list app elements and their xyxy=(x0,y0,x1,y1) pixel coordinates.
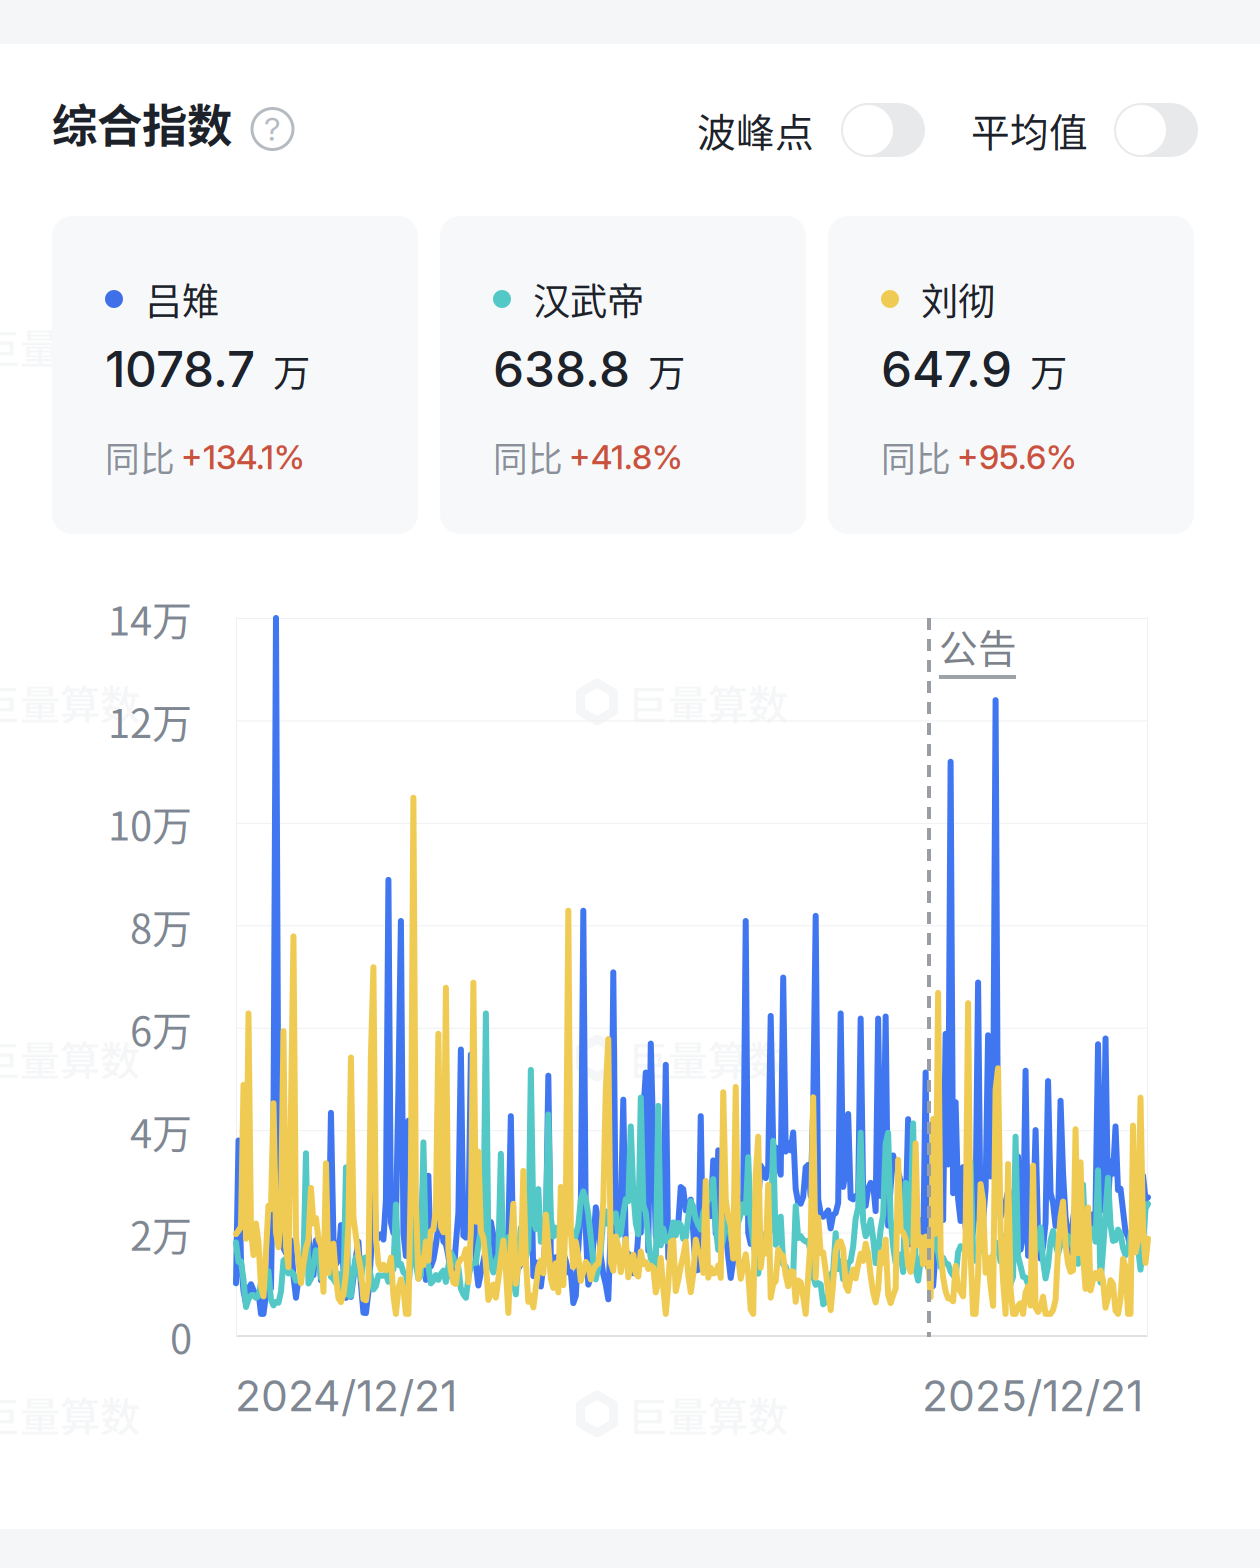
staticText: 2024/12/21 xyxy=(235,1370,457,1422)
staticText: 14万 xyxy=(108,589,192,647)
staticText: 12万 xyxy=(108,692,192,749)
staticText: +134.1% xyxy=(181,437,305,477)
staticText: 万 xyxy=(273,344,310,398)
staticText: 波峰点 xyxy=(697,102,814,158)
button[interactable]: 综合指数说明 xyxy=(0,90,293,156)
staticText: 综合指数 xyxy=(52,90,232,156)
button[interactable]: 波峰点 xyxy=(697,102,925,158)
staticText: 同比 xyxy=(493,432,563,482)
staticText: 万 xyxy=(1030,344,1067,398)
staticText: +41.8% xyxy=(569,437,683,477)
staticText: 万 xyxy=(648,344,685,398)
button[interactable]: 汉武帝 xyxy=(440,216,806,534)
staticText: 1078.7 xyxy=(105,339,255,399)
button[interactable]: 开关 xyxy=(1114,103,1198,157)
staticText: 巨量算数 xyxy=(628,317,788,375)
staticText: 巨量算数 xyxy=(0,317,140,375)
staticText: 0 xyxy=(170,1307,192,1365)
staticText: 2万 xyxy=(130,1204,192,1262)
button[interactable]: 开关 xyxy=(841,103,925,157)
staticText: 4万 xyxy=(130,1102,192,1160)
staticText: 巨量算数 xyxy=(628,1029,788,1087)
staticText: 同比 xyxy=(105,432,175,482)
staticText: 平均值 xyxy=(971,102,1088,158)
staticText: 同比 xyxy=(881,432,951,482)
staticText: ? xyxy=(264,110,281,148)
staticText: 吕雉 xyxy=(145,272,219,326)
staticText: 638.8 xyxy=(493,339,630,399)
button[interactable]: 吕雉 xyxy=(52,216,418,534)
button[interactable]: 刘彻 xyxy=(828,216,1194,534)
staticText: 刘彻 xyxy=(921,272,995,326)
staticText: 6万 xyxy=(130,999,192,1057)
staticText: +95.6% xyxy=(957,437,1077,477)
staticText: 巨量算数 xyxy=(0,1029,140,1087)
staticText: 巨量算数 xyxy=(0,673,140,731)
staticText: 10万 xyxy=(108,794,192,852)
staticText: 8万 xyxy=(130,897,192,955)
staticText: 巨量算数 xyxy=(628,673,788,731)
staticText: 647.9 xyxy=(881,339,1012,399)
staticText: 汉武帝 xyxy=(533,272,644,326)
button[interactable]: 平均值 xyxy=(971,102,1198,158)
staticText: 巨量算数 xyxy=(628,1385,788,1443)
staticText: 2025/12/21 xyxy=(922,1370,1143,1422)
staticText: 巨量算数 xyxy=(0,1385,140,1443)
staticText: 公告 xyxy=(939,618,1017,674)
